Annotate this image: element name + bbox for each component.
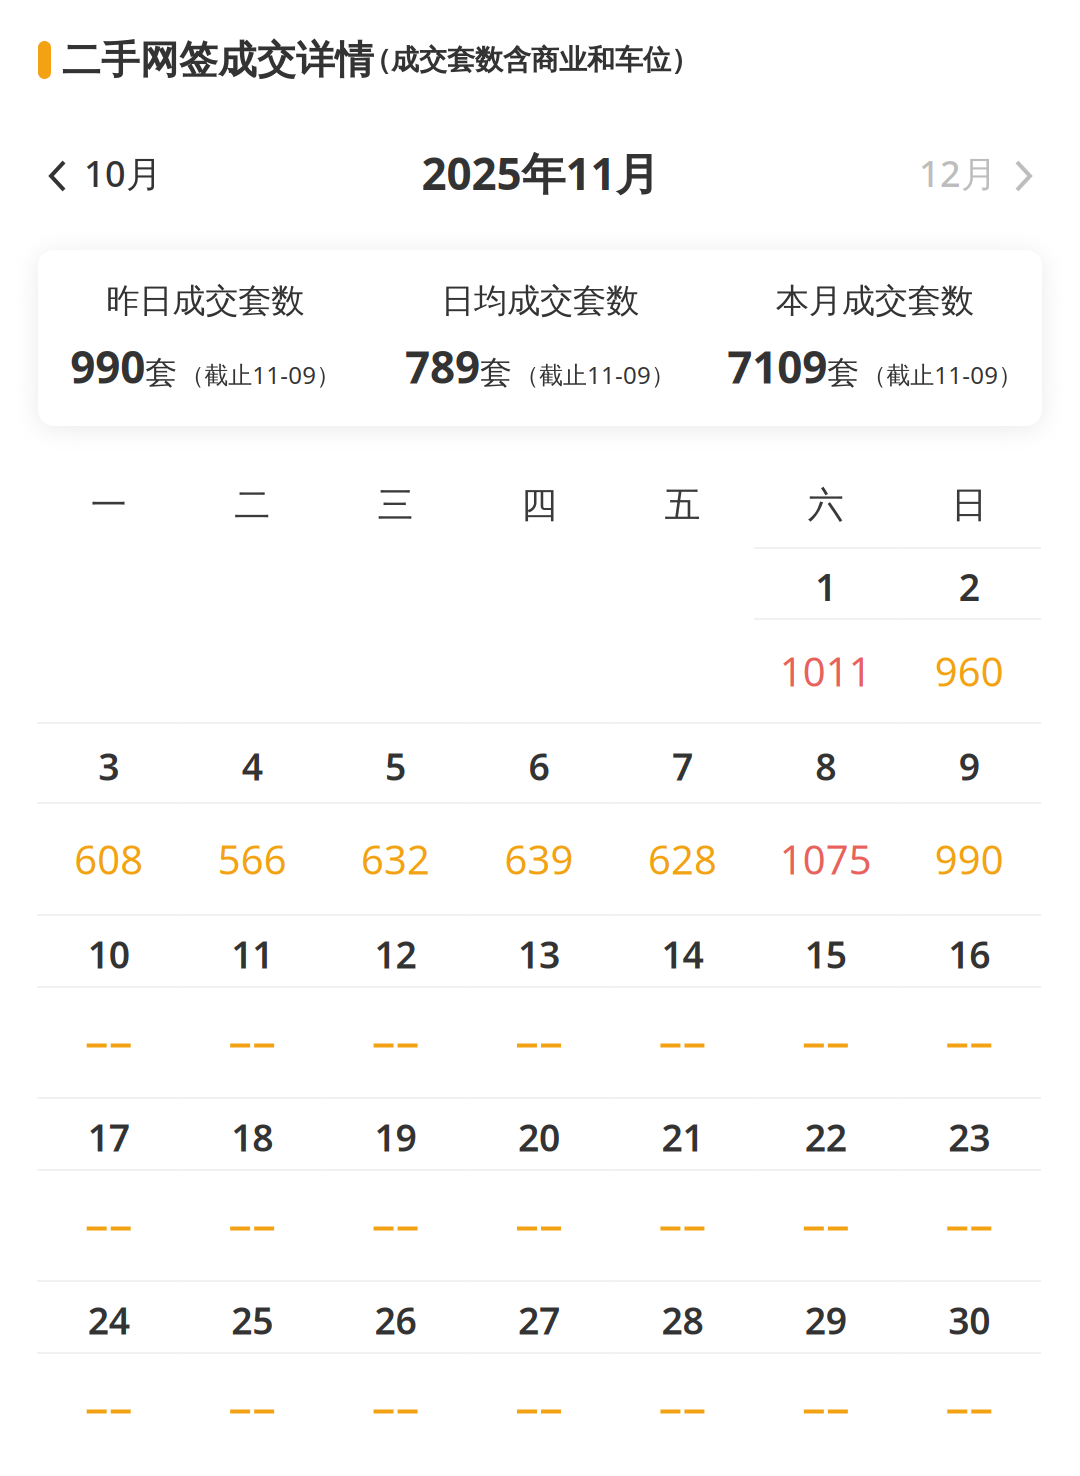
button[interactable]: 21 [611,1099,754,1169]
staticText: 12月 [919,149,997,197]
button[interactable]: 17 [37,1099,180,1169]
staticText: （截止11-09） [180,359,340,390]
staticText: 四 [521,483,557,527]
button[interactable]: 9 [898,724,1041,802]
staticText: 990 [935,832,1004,885]
staticText: 23 [948,1112,990,1162]
staticText: 16 [948,929,990,979]
button[interactable]: 6 [467,724,611,802]
staticText: 1075 [780,832,872,885]
button[interactable]: 22 [754,1099,897,1169]
staticText: 本月成交套数 [776,280,974,321]
button[interactable]: 10 [37,916,180,986]
staticText: 8 [815,741,836,791]
staticText: 21 [661,1112,703,1162]
button[interactable]: 10月 [0,136,182,210]
staticText: 12 [375,929,417,979]
staticText: 7 [672,741,693,791]
staticText: 14 [661,929,703,979]
staticText: 一 [91,483,127,527]
staticText: 2025年11月 [421,144,659,202]
staticText: 10月 [84,149,162,197]
staticText: 1011 [780,644,872,697]
button[interactable]: 11 [180,916,324,986]
button[interactable]: 20 [467,1099,611,1169]
staticText: 27 [518,1295,560,1345]
button[interactable]: 7 [611,724,754,802]
button[interactable]: 27 [467,1282,611,1352]
button[interactable]: 1 [754,549,897,618]
staticText: 9 [959,741,980,791]
staticText: 二手网签成交详情 [62,36,374,84]
staticText: 6 [528,741,549,791]
staticText: 套 [827,353,859,392]
button[interactable]: 30 [898,1282,1041,1352]
button[interactable]: 16 [898,916,1041,986]
staticText: （截止11-09） [862,359,1022,390]
staticText: 17 [88,1112,130,1162]
button[interactable]: 24 [37,1282,180,1352]
button[interactable]: 23 [898,1099,1041,1169]
staticText: 五 [664,483,700,527]
staticText: 990 [70,337,145,396]
staticText: 960 [935,644,1004,697]
staticText: 二 [234,483,270,527]
staticText: 19 [375,1112,417,1162]
button[interactable]: 13 [467,916,611,986]
staticText: 10 [88,929,130,979]
staticText: 26 [375,1295,417,1345]
button[interactable]: 12月 [899,136,1080,210]
button[interactable]: 12 [324,916,467,986]
staticText: 1 [815,562,836,611]
button[interactable]: 26 [324,1282,467,1352]
button[interactable]: 14 [611,916,754,986]
button[interactable]: 5 [324,724,467,802]
staticText: 25 [231,1295,273,1345]
staticText: 628 [648,832,717,885]
staticText: 日均成交套数 [441,280,639,321]
staticText: 20 [518,1112,560,1162]
staticText: 30 [948,1295,990,1345]
staticText: 7109 [727,337,827,396]
staticText: 22 [805,1112,847,1162]
staticText: 608 [74,832,143,885]
staticText: 六 [808,483,844,527]
staticText: 2 [959,562,980,611]
staticText: 套 [480,353,512,392]
button[interactable]: 25 [180,1282,324,1352]
button[interactable]: 15 [754,916,897,986]
button[interactable]: 2 [898,549,1041,618]
staticText: 套 [145,353,177,392]
staticText: 29 [805,1295,847,1345]
staticText: 566 [218,832,287,885]
staticText: 昨日成交套数 [106,280,304,321]
staticText: 24 [88,1295,130,1345]
staticText: 日 [951,483,987,527]
staticText: （成交套数含商业和车位） [363,43,699,77]
staticText: 15 [805,929,847,979]
button[interactable]: 28 [611,1282,754,1352]
button[interactable]: 3 [37,724,180,802]
staticText: 5 [385,741,406,791]
staticText: 4 [242,741,263,791]
staticText: 28 [661,1295,703,1345]
button[interactable]: 19 [324,1099,467,1169]
staticText: 18 [231,1112,273,1162]
button[interactable]: 29 [754,1282,897,1352]
staticText: 789 [405,337,480,396]
button[interactable]: 8 [754,724,897,802]
button[interactable]: 4 [180,724,324,802]
staticText: 11 [231,929,273,979]
staticText: 三 [378,483,414,527]
staticText: 13 [518,929,560,979]
staticText: 632 [361,832,430,885]
staticText: 3 [98,741,119,791]
staticText: （截止11-09） [515,359,675,390]
staticText: 639 [504,832,573,885]
button[interactable]: 18 [180,1099,324,1169]
